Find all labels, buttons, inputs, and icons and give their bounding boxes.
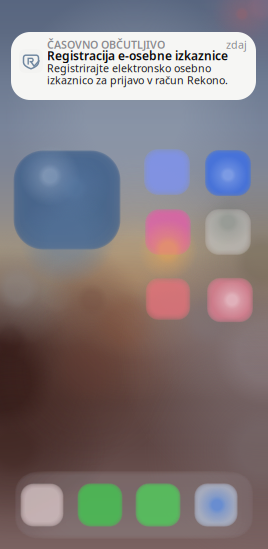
- staticText: ČASOVNO OBČUTLJIVO: [47, 37, 165, 52]
- staticText: Registrirajte elektronsko osebno: [47, 61, 211, 75]
- staticText: Registracija e-osebne izkaznice: [47, 47, 228, 63]
- button[interactable]: ČASOVNO OBČUTLJIVO: [11, 32, 256, 100]
- staticText: zdaj: [226, 37, 247, 52]
- staticText: izkaznico za prijavo v račun Rekono.: [47, 73, 228, 87]
